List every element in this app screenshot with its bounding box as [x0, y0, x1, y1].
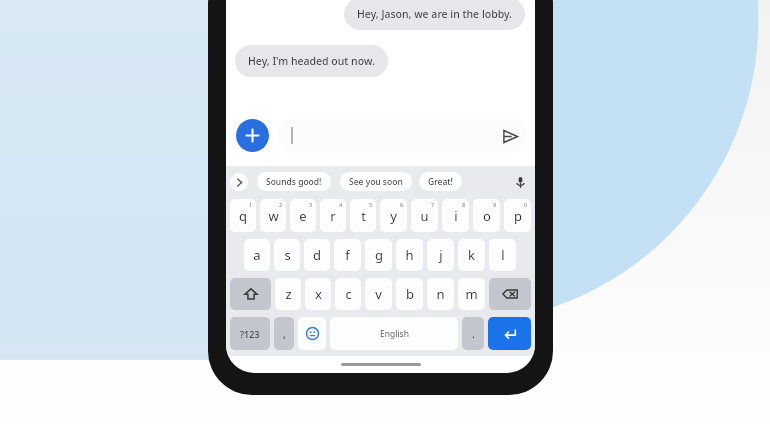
- staticText: l: [501, 246, 505, 264]
- staticText: .: [472, 327, 475, 341]
- button[interactable]: i: [442, 199, 469, 232]
- button[interactable]: More suggestions: [230, 173, 248, 191]
- button[interactable]: h: [396, 239, 423, 271]
- staticText: y: [390, 207, 397, 225]
- button[interactable]: y: [380, 199, 407, 232]
- staticText: 4: [339, 201, 343, 208]
- staticText: w: [268, 207, 279, 225]
- staticText: v: [375, 285, 382, 303]
- staticText: u: [420, 207, 429, 225]
- button[interactable]: p: [504, 199, 531, 232]
- button[interactable]: n: [427, 278, 454, 310]
- button[interactable]: x: [305, 278, 331, 310]
- button[interactable]: j: [427, 239, 454, 271]
- button[interactable]: Great!: [419, 172, 462, 191]
- button[interactable]: u: [411, 199, 438, 232]
- staticText: m: [465, 285, 478, 303]
- staticText: r: [330, 207, 336, 225]
- staticText: ,: [283, 327, 286, 341]
- staticText: 3: [309, 201, 313, 208]
- staticText: s: [284, 246, 291, 264]
- staticText: a: [253, 246, 261, 264]
- button[interactable]: ,: [274, 317, 294, 350]
- button[interactable]: b: [396, 278, 423, 310]
- button[interactable]: l: [489, 239, 516, 271]
- button[interactable]: a: [244, 239, 270, 271]
- staticText: h: [405, 246, 414, 264]
- button[interactable]: .: [462, 317, 484, 350]
- button[interactable]: See you soon: [340, 172, 412, 191]
- button[interactable]: Send: [278, 118, 527, 153]
- staticText: c: [345, 285, 352, 303]
- staticText: q: [239, 207, 247, 225]
- staticText: English: [380, 328, 409, 340]
- staticText: f: [345, 246, 350, 264]
- button[interactable]: Add attachment: [236, 119, 269, 152]
- staticText: Hey, Jason, we are in the lobby.: [357, 7, 512, 21]
- button[interactable]: f: [334, 239, 361, 271]
- button[interactable]: Emoji: [298, 317, 326, 350]
- button[interactable]: Hey, Jason, we are in the lobby.: [344, 0, 525, 30]
- button[interactable]: m: [458, 278, 485, 310]
- button[interactable]: g: [365, 239, 392, 271]
- button[interactable]: s: [274, 239, 300, 271]
- staticText: o: [483, 207, 491, 225]
- button[interactable]: t: [350, 199, 376, 232]
- staticText: See you soon: [349, 176, 403, 188]
- staticText: z: [285, 285, 292, 303]
- staticText: 7: [431, 201, 435, 208]
- staticText: b: [406, 285, 414, 303]
- button[interactable]: z: [275, 278, 301, 310]
- staticText: ?123: [240, 328, 260, 340]
- button[interactable]: d: [304, 239, 330, 271]
- button[interactable]: Hey, I'm headed out now.: [235, 45, 388, 77]
- button[interactable]: English: [330, 317, 458, 350]
- staticText: Sounds good!: [266, 176, 322, 188]
- staticText: k: [468, 246, 475, 264]
- staticText: e: [299, 207, 307, 225]
- staticText: 2: [279, 201, 283, 208]
- button[interactable]: r: [320, 199, 346, 232]
- button[interactable]: c: [335, 278, 361, 310]
- staticText: 9: [493, 201, 497, 208]
- staticText: 1: [249, 201, 253, 208]
- button[interactable]: ?123: [230, 317, 270, 350]
- staticText: 8: [462, 201, 466, 208]
- staticText: i: [454, 207, 458, 225]
- staticText: g: [375, 246, 383, 264]
- button[interactable]: Shift: [230, 278, 271, 310]
- button[interactable]: w: [260, 199, 286, 232]
- button[interactable]: k: [458, 239, 485, 271]
- staticText: Hey, I'm headed out now.: [248, 54, 375, 68]
- staticText: Great!: [428, 176, 453, 188]
- button[interactable]: o: [473, 199, 500, 232]
- button[interactable]: Backspace: [489, 278, 531, 310]
- staticText: x: [315, 285, 322, 303]
- staticText: n: [436, 285, 445, 303]
- staticText: t: [361, 207, 366, 225]
- staticText: 5: [369, 201, 373, 208]
- button[interactable]: q: [230, 199, 256, 232]
- button[interactable]: Sounds good!: [257, 172, 331, 191]
- staticText: 6: [400, 201, 404, 208]
- button[interactable]: v: [365, 278, 392, 310]
- button[interactable]: e: [290, 199, 316, 232]
- button[interactable]: Enter: [488, 317, 531, 350]
- staticText: d: [313, 246, 321, 264]
- staticText: p: [514, 207, 522, 225]
- staticText: 0: [524, 201, 528, 208]
- staticText: j: [439, 246, 443, 264]
- button[interactable]: Send: [496, 122, 524, 150]
- button[interactable]: Voice input: [511, 173, 529, 191]
